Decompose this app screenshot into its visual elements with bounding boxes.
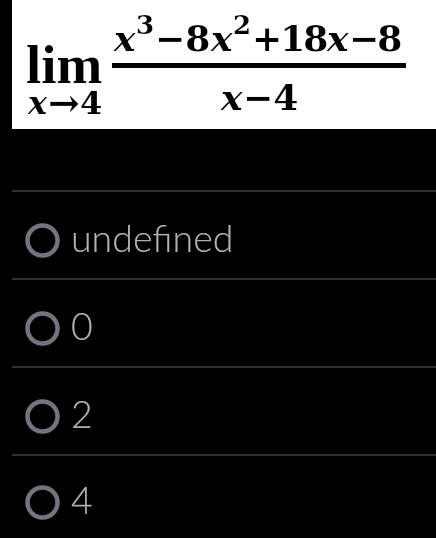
button[interactable]: Select undefined [0, 190, 436, 278]
staticText: x [28, 84, 48, 122]
other: Select 0 [25, 311, 60, 346]
staticText: 4 [80, 84, 103, 122]
button[interactable]: Select 2 [0, 366, 436, 454]
staticText: 3 [136, 10, 155, 41]
staticText: −4 [243, 76, 299, 118]
staticText: −8 [349, 17, 401, 59]
staticText: +18 [252, 17, 327, 59]
other: Select undefined [25, 223, 60, 258]
staticText: x [221, 76, 243, 118]
other: Select 2 [25, 399, 60, 434]
staticText: 2 [71, 391, 93, 436]
staticText: 0 [71, 303, 93, 348]
other: Select 4 [25, 485, 60, 520]
staticText: x [114, 17, 136, 59]
staticText: x [211, 17, 233, 59]
staticText: x [327, 17, 349, 59]
staticText: → [48, 80, 80, 125]
staticText: −8 [155, 17, 211, 59]
staticText: undefined [71, 215, 234, 260]
staticText: 2 [233, 10, 252, 41]
button[interactable]: Select 4 [0, 454, 436, 538]
staticText: lim [26, 34, 103, 95]
staticText: 4 [71, 477, 93, 522]
button[interactable]: Select 0 [0, 278, 436, 366]
